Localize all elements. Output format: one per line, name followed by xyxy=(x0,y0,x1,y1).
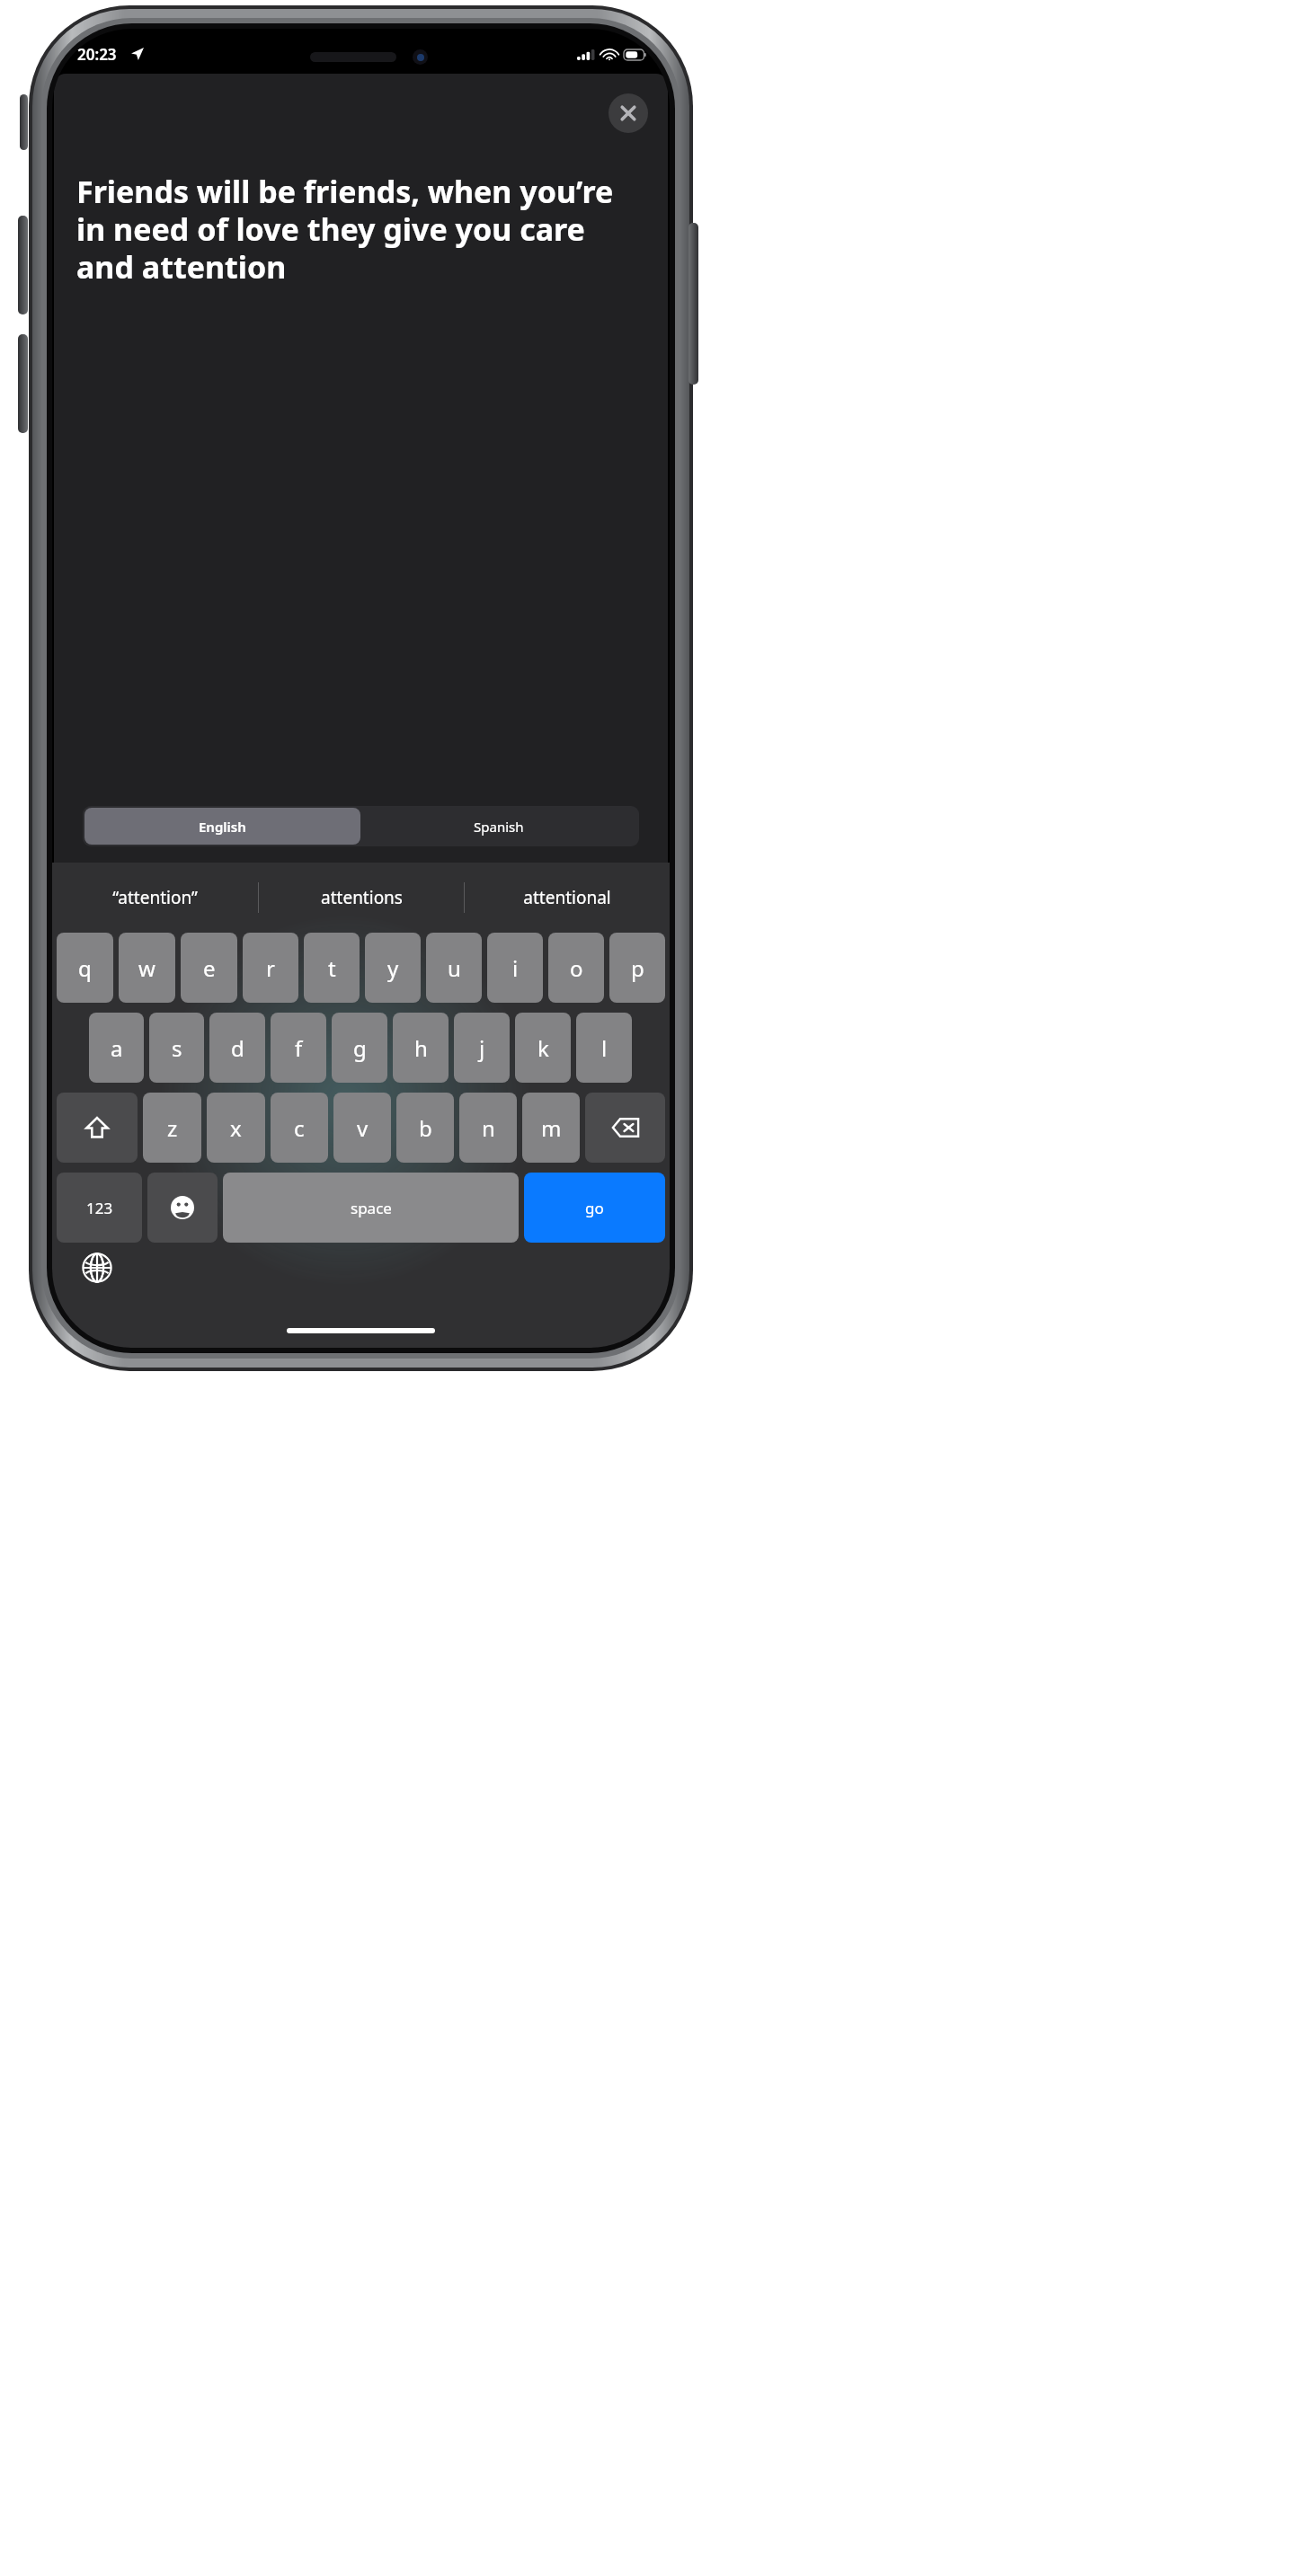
button[interactable]: Change keyboard xyxy=(79,1250,115,1286)
button[interactable]: f xyxy=(271,1013,326,1083)
button[interactable]: i xyxy=(487,933,543,1003)
staticText: n xyxy=(482,1113,495,1143)
button[interactable]: x xyxy=(207,1093,265,1163)
button[interactable]: e xyxy=(181,933,237,1003)
staticText: p xyxy=(631,953,644,983)
staticText: c xyxy=(294,1113,305,1143)
staticText: v xyxy=(357,1113,369,1143)
button[interactable]: Shift xyxy=(57,1093,138,1163)
button[interactable]: t xyxy=(304,933,360,1003)
staticText: attentions xyxy=(321,886,403,909)
button[interactable]: Delete xyxy=(585,1093,665,1163)
staticText: go xyxy=(585,1198,604,1218)
staticText: Friends will be friends, when you’re in … xyxy=(76,171,616,288)
button[interactable]: r xyxy=(243,933,298,1003)
staticText: j xyxy=(479,1033,485,1063)
staticText: u xyxy=(448,953,461,983)
button[interactable]: Spanish xyxy=(360,808,637,845)
button[interactable]: a xyxy=(89,1013,144,1083)
button[interactable]: “attention” xyxy=(52,863,258,933)
staticText: l xyxy=(601,1033,608,1063)
staticText: 123 xyxy=(86,1198,113,1218)
button[interactable]: Close xyxy=(609,93,648,133)
staticText: x xyxy=(230,1113,242,1143)
button[interactable]: g xyxy=(332,1013,387,1083)
button[interactable]: space xyxy=(223,1173,519,1243)
button[interactable]: b xyxy=(396,1093,454,1163)
staticText: attentional xyxy=(523,886,611,909)
button[interactable]: w xyxy=(119,933,175,1003)
staticText: m xyxy=(541,1113,562,1143)
button[interactable]: k xyxy=(515,1013,571,1083)
button[interactable]: s xyxy=(149,1013,204,1083)
button[interactable]: l xyxy=(576,1013,632,1083)
staticText: “attention” xyxy=(112,886,198,909)
staticText: d xyxy=(231,1033,244,1063)
button[interactable]: o xyxy=(548,933,604,1003)
button[interactable]: n xyxy=(459,1093,517,1163)
button[interactable]: y xyxy=(365,933,421,1003)
staticText: e xyxy=(203,953,216,983)
button[interactable]: p xyxy=(609,933,665,1003)
staticText: s xyxy=(172,1033,182,1063)
staticText: r xyxy=(266,953,275,983)
staticText: g xyxy=(353,1033,367,1063)
staticText: 20:23 xyxy=(77,44,117,65)
button[interactable]: 123 xyxy=(57,1173,142,1243)
staticText: w xyxy=(138,953,155,983)
button[interactable]: m xyxy=(522,1093,580,1163)
staticText: Spanish xyxy=(474,818,524,836)
button[interactable]: c xyxy=(271,1093,328,1163)
button[interactable]: English xyxy=(84,808,360,845)
button[interactable]: d xyxy=(209,1013,265,1083)
staticText: b xyxy=(419,1113,432,1143)
staticText: h xyxy=(414,1033,428,1063)
button[interactable]: z xyxy=(143,1093,201,1163)
staticText: y xyxy=(387,953,399,983)
button[interactable]: go xyxy=(524,1173,665,1243)
staticText: English xyxy=(199,818,246,836)
button[interactable]: attentional xyxy=(465,863,670,933)
staticText: t xyxy=(328,953,336,983)
staticText: a xyxy=(111,1033,123,1063)
button[interactable]: attentions xyxy=(259,863,464,933)
staticText: space xyxy=(351,1198,392,1218)
button[interactable]: j xyxy=(454,1013,510,1083)
button[interactable]: u xyxy=(426,933,482,1003)
staticText: f xyxy=(295,1033,303,1063)
staticText: k xyxy=(537,1033,549,1063)
button[interactable]: h xyxy=(393,1013,449,1083)
staticText: o xyxy=(570,953,583,983)
button[interactable]: q xyxy=(57,933,113,1003)
staticText: i xyxy=(512,953,519,983)
staticText: q xyxy=(78,953,92,983)
button[interactable]: v xyxy=(333,1093,391,1163)
staticText: z xyxy=(167,1113,178,1143)
button[interactable]: Emoji xyxy=(147,1173,218,1243)
